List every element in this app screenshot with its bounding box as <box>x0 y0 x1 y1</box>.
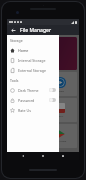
button[interactable]: Home <box>39 152 47 160</box>
button[interactable]: PPT <box>44 98 77 122</box>
button[interactable]: Recent apps <box>59 152 67 160</box>
staticText: Rate Us <box>18 108 31 113</box>
staticText: Storage <box>10 38 23 43</box>
button[interactable]: Back <box>9 26 17 34</box>
staticText: PPT <box>59 114 64 117</box>
staticText: VIDEO <box>57 89 65 92</box>
button[interactable]: Rate Us <box>10 105 56 115</box>
staticText: External Storage <box>18 68 46 73</box>
button[interactable]: Back <box>19 152 27 160</box>
staticText: File Manager <box>20 27 52 34</box>
button[interactable]: Dark Theme <box>10 85 56 95</box>
staticText: Internal Storage <box>18 58 46 63</box>
staticText: Password <box>18 98 49 103</box>
button[interactable]: VIDEO <box>44 72 77 96</box>
button[interactable]: PLAY STORE <box>44 124 77 148</box>
staticText: PLAY STORE <box>54 140 67 143</box>
button[interactable]: XLS <box>9 98 42 122</box>
button[interactable]: PDF <box>9 72 42 96</box>
button[interactable]: SD CARD <box>9 37 77 70</box>
staticText: Home <box>18 48 29 53</box>
staticText: TOTAL 32GB / FREE 12GB <box>30 62 56 65</box>
button[interactable]: Internal Storage <box>10 55 56 65</box>
staticText: Tools <box>10 78 19 83</box>
button[interactable]: External Storage <box>10 65 56 75</box>
button[interactable]: Home <box>10 45 56 55</box>
staticText: Dark Theme <box>18 88 49 93</box>
staticText: PDF <box>24 88 29 91</box>
button[interactable]: Password <box>10 95 56 105</box>
